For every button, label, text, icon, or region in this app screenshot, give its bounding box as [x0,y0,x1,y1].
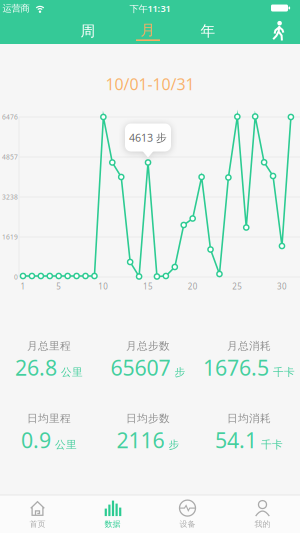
staticText: 步 [168,438,179,451]
staticText: 周 [80,22,95,40]
staticText: 54.1 [215,426,257,454]
staticText: 数据 [104,519,120,529]
staticText: 3238 [2,193,18,201]
button[interactable]: 首页 [0,495,75,533]
staticText: 0.9 [21,426,51,454]
staticText: 4613 步 [129,130,167,145]
button[interactable]: 步行 [270,20,288,42]
staticText: 公里 [61,366,83,379]
staticText: 4857 [2,153,18,161]
staticText: 25 [232,281,242,292]
staticText: 首页 [29,519,45,529]
staticText: 10/01-10/31 [105,73,194,95]
staticText: 千卡 [261,438,283,451]
staticText: 月总里程 [27,339,71,352]
button[interactable]: 年 [186,19,230,43]
staticText: 步 [174,366,185,379]
button[interactable]: 月 [126,19,170,43]
staticText: 1619 [2,233,18,241]
staticText: 0 [14,273,18,281]
staticText: 公里 [55,438,77,451]
staticText: 月总步数 [126,339,170,352]
staticText: 月 [140,21,155,39]
staticText: 26.8 [15,353,57,382]
staticText: 月总消耗 [227,339,271,352]
staticText: 日均步数 [126,412,170,425]
staticText: 30 [277,281,287,292]
staticText: 2116 [116,426,164,454]
staticText: 1 [20,281,25,292]
staticText: 10 [98,281,108,292]
staticText: 1676.5 [203,353,269,382]
staticText: 5 [56,281,61,292]
staticText: 日均消耗 [227,412,271,425]
button[interactable]: 设备 [150,495,225,533]
staticText: 设备 [179,519,195,529]
button[interactable]: 周 [66,19,110,43]
staticText: 6476 [2,113,18,121]
staticText: 日均里程 [27,412,71,425]
staticText: 年 [200,22,215,40]
staticText: 下午11:31 [129,2,170,15]
staticText: 65607 [110,353,170,382]
button[interactable]: 数据 [75,495,150,533]
staticText: 运营商 [2,3,29,14]
staticText: 千卡 [273,366,295,379]
button[interactable]: 我的 [225,495,300,533]
staticText: 15 [143,281,153,292]
staticText: 20 [188,281,198,292]
staticText: 我的 [254,519,270,529]
